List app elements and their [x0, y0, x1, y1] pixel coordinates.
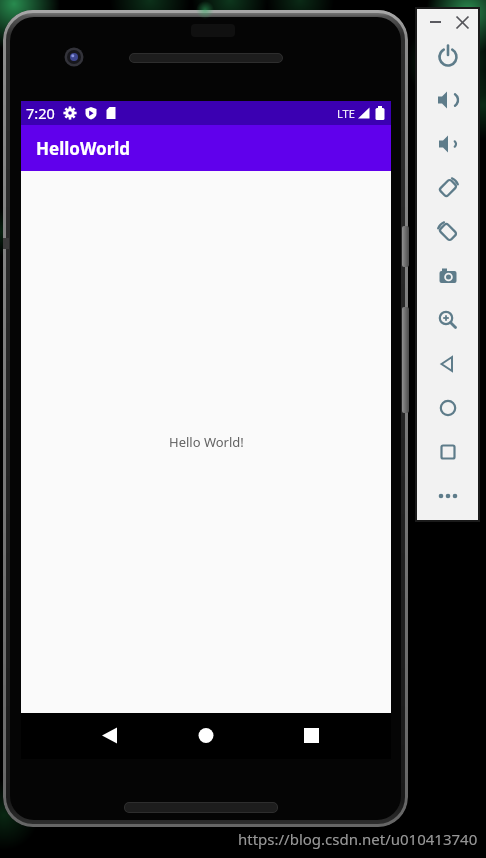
- staticText: https://blog.csdn.net/u010413740: [238, 829, 478, 849]
- staticText: Hello World!: [169, 433, 244, 451]
- button[interactable]: [426, 298, 470, 342]
- button[interactable]: [426, 474, 470, 518]
- button[interactable]: [21, 713, 145, 759]
- staticText: HelloWorld: [36, 137, 131, 160]
- staticText: 7:20: [26, 103, 55, 123]
- button[interactable]: [426, 166, 470, 210]
- button[interactable]: [426, 210, 470, 254]
- button[interactable]: [426, 78, 470, 122]
- button[interactable]: [426, 34, 470, 78]
- staticText: LTE: [337, 106, 355, 121]
- button[interactable]: [426, 342, 470, 386]
- button[interactable]: [451, 11, 473, 33]
- button[interactable]: [426, 386, 470, 430]
- button[interactable]: [426, 122, 470, 166]
- button[interactable]: [268, 713, 391, 759]
- button[interactable]: [425, 12, 445, 32]
- button[interactable]: [426, 430, 470, 474]
- button[interactable]: HelloWorld: [21, 125, 391, 171]
- button[interactable]: [426, 254, 470, 298]
- button[interactable]: [145, 713, 268, 759]
